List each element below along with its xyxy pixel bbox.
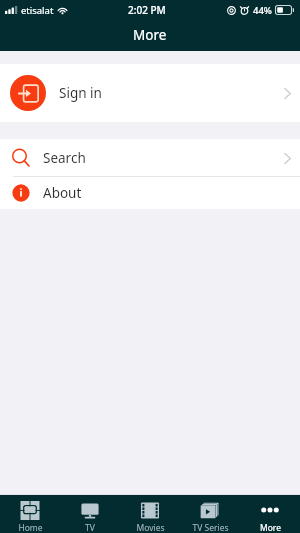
staticText: More — [133, 26, 167, 44]
staticText: TV Series — [192, 522, 229, 533]
button[interactable]: Movies — [120, 495, 180, 533]
staticText: 2:02 PM — [128, 3, 166, 17]
staticText: More — [260, 522, 281, 533]
button[interactable]: Open — [280, 86, 294, 100]
staticText: Movies — [136, 522, 165, 533]
staticText: About — [43, 184, 82, 202]
staticText: TV — [85, 522, 95, 533]
button[interactable]: More — [240, 495, 300, 533]
button[interactable]: Sign in — [0, 64, 300, 122]
staticText: Home — [18, 522, 43, 533]
staticText: etisalat — [21, 4, 54, 17]
button[interactable]: Home — [0, 495, 60, 533]
button[interactable]: Search — [0, 139, 300, 176]
staticText: Sign in — [59, 84, 102, 102]
staticText: Search — [43, 149, 86, 167]
staticText: 44% — [253, 4, 272, 17]
button[interactable]: TV Series — [180, 495, 240, 533]
button[interactable]: About — [0, 177, 300, 209]
button[interactable]: Open — [280, 151, 294, 165]
button[interactable]: TV — [60, 495, 120, 533]
